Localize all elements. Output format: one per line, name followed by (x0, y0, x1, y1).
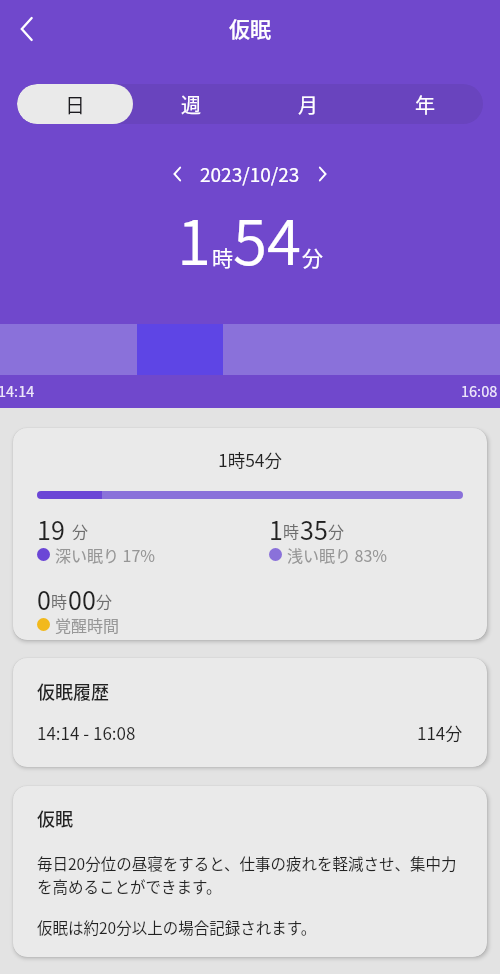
staticText: 14:14 (0, 380, 35, 401)
staticText: 年 (415, 90, 435, 119)
staticText: 2023/10/23 (200, 160, 300, 188)
staticText: 月 (298, 90, 318, 119)
staticText: 1 (177, 193, 212, 283)
staticText: 00 (68, 581, 96, 617)
staticText: 16:08 (461, 380, 498, 401)
staticText: 時 (212, 242, 233, 272)
staticText: 仮眠履歴 (37, 678, 109, 704)
staticText: 分 (72, 519, 89, 542)
staticText: 19 (37, 511, 65, 547)
staticText: 分 (96, 589, 113, 612)
staticText: 浅い眠り 83% (287, 543, 388, 566)
staticText: 覚醒時間 (55, 613, 120, 636)
staticText: 1 (269, 511, 283, 547)
button[interactable]: 日 (17, 84, 133, 124)
button[interactable]: 週 (133, 84, 249, 124)
staticText: 時 (283, 519, 300, 542)
staticText: 仮眠 (229, 13, 271, 43)
staticText: 毎日20分位の昼寝をすると、仕事の疲れを軽減させ、集中力を高めることができます。 (37, 852, 463, 898)
staticText: 深い眠り 17% (55, 543, 156, 566)
button[interactable]: Back (4, 6, 50, 52)
staticText: 114分 (417, 720, 463, 745)
button[interactable]: 月 (249, 84, 366, 124)
staticText: 0 (37, 581, 51, 617)
staticText: 仮眠 (37, 805, 73, 831)
staticText: 分 (328, 519, 345, 542)
staticText: 54 (233, 193, 302, 283)
button[interactable]: 年 (366, 84, 483, 124)
staticText: 14:14 - 16:08 (37, 720, 136, 745)
staticText: 時 (51, 589, 68, 612)
staticText: 週 (181, 90, 201, 119)
staticText: 35 (300, 511, 328, 547)
staticText: 1時54分 (37, 447, 463, 472)
button[interactable]: Previous day (160, 156, 196, 192)
staticText: 仮眠は約20分以上の場合記録されます。 (37, 916, 317, 938)
staticText: 分 (302, 242, 323, 272)
button[interactable]: 14:14 - 16:08 (37, 720, 463, 745)
staticText: 日 (65, 90, 85, 119)
button[interactable]: Next day (304, 156, 340, 192)
